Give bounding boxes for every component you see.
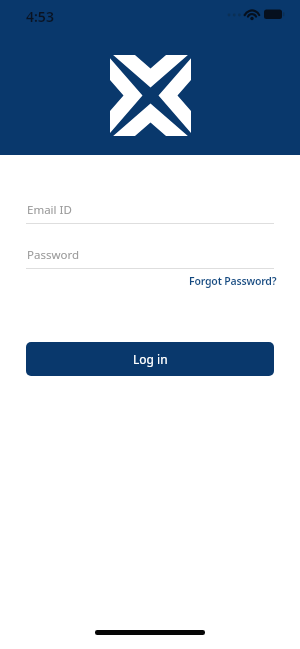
button[interactable]: Forgot Password? (189, 274, 277, 288)
staticText: 4:53 (26, 7, 54, 26)
staticText: Log in (133, 351, 168, 367)
button[interactable]: Password (26, 241, 274, 269)
button[interactable]: Email ID (26, 196, 274, 224)
button[interactable]: Log in (26, 342, 274, 376)
staticText: Email ID (27, 202, 72, 218)
staticText: Forgot Password? (189, 274, 277, 288)
staticText: Password (27, 247, 80, 263)
